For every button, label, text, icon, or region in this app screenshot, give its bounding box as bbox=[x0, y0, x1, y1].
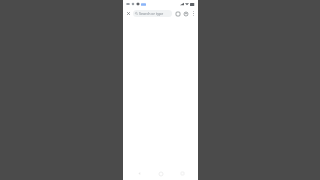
button[interactable]: Close bbox=[125, 10, 132, 17]
button[interactable]: Recent apps bbox=[177, 168, 188, 179]
button[interactable]: More options bbox=[190, 10, 196, 16]
button[interactable]: Home bbox=[155, 168, 166, 179]
staticText: Search or type URL bbox=[139, 11, 170, 16]
button[interactable]: Search or type URL bbox=[133, 10, 172, 17]
button[interactable]: Tabs bbox=[174, 10, 181, 17]
button[interactable]: Account bbox=[182, 10, 189, 17]
